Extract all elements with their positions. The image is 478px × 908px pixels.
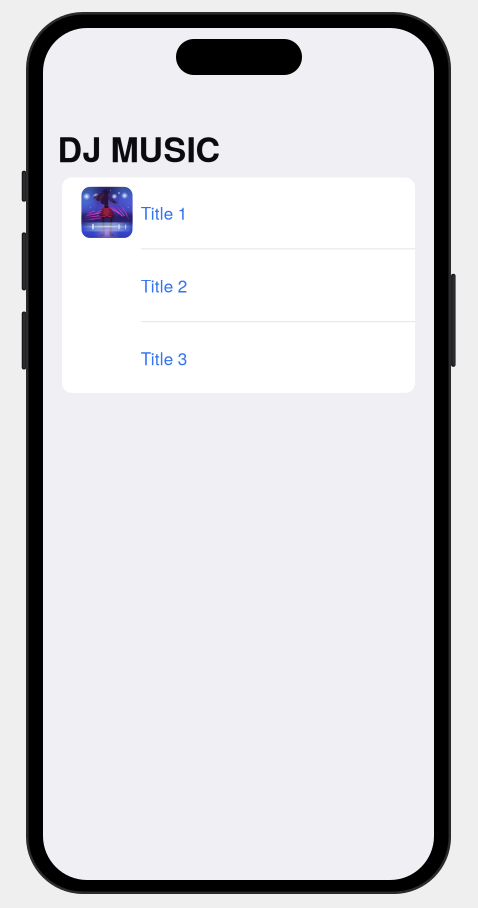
- button[interactable]: Title 3: [62, 322, 415, 394]
- staticText: Title 2: [141, 273, 187, 297]
- button[interactable]: Title 1: [62, 176, 415, 248]
- button[interactable]: DJ MUSIC: [58, 124, 221, 173]
- staticText: DJ MUSIC: [58, 124, 221, 173]
- staticText: Title 3: [141, 346, 187, 370]
- button[interactable]: Title 2: [62, 249, 415, 321]
- staticText: Title 1: [141, 200, 187, 225]
